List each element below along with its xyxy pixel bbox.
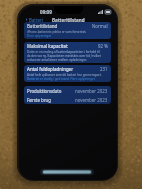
staticText: Produktionsdato <box>27 88 62 94</box>
staticText: november 2023 <box>75 88 108 94</box>
staticText: 92 % <box>98 43 108 49</box>
button[interactable]: Batteritilstand <box>24 22 111 39</box>
staticText: 09:09 <box>40 9 52 15</box>
staticText: Antal hele cyklusser som dit batteri har… <box>27 73 102 77</box>
staticText: Maksimal kapacitet <box>27 43 68 49</box>
button[interactable]: Første brug <box>24 95 111 104</box>
staticText: da den var ny. Kapaciteten mindskes over… <box>27 54 101 58</box>
staticText: Batteritilstand <box>27 23 58 29</box>
other: Back <box>25 18 28 21</box>
staticText: november 2023 <box>75 97 108 103</box>
staticText: Normal <box>92 23 108 29</box>
button[interactable]: Maksimal kapacitet <box>24 42 111 63</box>
staticText: Første brug <box>27 97 51 103</box>
staticText: Batteri <box>29 17 43 22</box>
staticText: Batteriet er stadig i god stand. Flere o… <box>27 77 95 81</box>
button[interactable]: Produktionsdato <box>24 86 111 104</box>
staticText: 231 <box>100 66 108 72</box>
staticText: Antal fuldopladninger <box>27 66 73 72</box>
staticText: Batteritilstand <box>52 17 85 23</box>
staticText: Dette er en maling af batterikapaciteten… <box>27 50 100 54</box>
staticText: reducerer antal timer mellem opladninger… <box>27 58 87 62</box>
button[interactable]: Back <box>24 16 44 23</box>
staticText: Flere oplysninger <box>27 34 52 38</box>
button[interactable]: Produktionsdato <box>24 86 111 95</box>
staticText: iPhone-batteriets ydelse er som forvente… <box>27 30 87 34</box>
button[interactable]: Antal fuldopladninger <box>24 65 111 82</box>
